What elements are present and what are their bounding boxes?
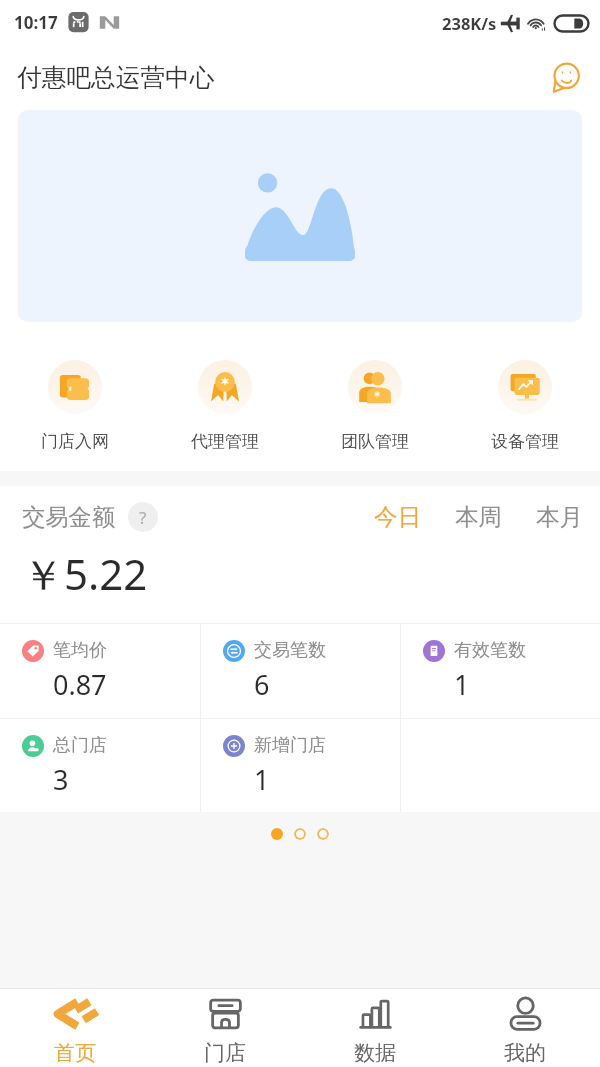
staticText: ? <box>139 506 147 529</box>
staticText: 0.87 <box>53 666 107 703</box>
staticText: ￥5.22 <box>22 545 148 602</box>
button[interactable]: 本月 <box>519 495 600 539</box>
staticText: 1 <box>254 761 270 798</box>
staticText: 6 <box>254 666 270 703</box>
staticText: 交易金额 <box>22 503 116 532</box>
staticText: 3 <box>53 761 69 798</box>
button[interactable]: 我的 <box>450 989 600 1067</box>
staticText: 门店入网 <box>41 431 109 452</box>
button[interactable]: 新增门店 <box>201 719 400 812</box>
staticText: 团队管理 <box>341 431 409 452</box>
button[interactable]: 代理管理 <box>150 360 300 452</box>
staticText: 首页 <box>54 1040 96 1066</box>
staticText: 付惠吧总运营中心 <box>17 62 215 93</box>
button[interactable]: 门店 <box>150 989 300 1067</box>
staticText: 数据 <box>354 1040 396 1066</box>
button[interactable]: 团队管理 <box>300 360 450 452</box>
staticText: 238K/s <box>442 12 497 34</box>
button[interactable]: 今日 <box>357 495 438 539</box>
staticText: 笔均价 <box>53 639 107 662</box>
staticText: 代理管理 <box>191 431 259 452</box>
button[interactable]: 门店入网 <box>0 360 150 452</box>
staticText: 门店 <box>204 1040 246 1066</box>
button[interactable]: 首页 <box>0 989 150 1067</box>
staticText: 10:17 <box>14 11 58 34</box>
staticText: 本周 <box>455 502 502 532</box>
button[interactable]: Help <box>128 502 158 532</box>
staticText: 本月 <box>536 502 583 532</box>
button[interactable]: 有效笔数 <box>401 624 600 718</box>
button[interactable]: 笔均价 <box>0 624 200 718</box>
button[interactable]: 总门店 <box>0 719 200 812</box>
staticText: 1 <box>454 666 470 703</box>
button[interactable]: 设备管理 <box>450 360 600 452</box>
button[interactable]: Feedback <box>546 58 586 98</box>
staticText: 新增门店 <box>254 734 326 757</box>
staticText: 有效笔数 <box>454 639 526 662</box>
staticText: 今日 <box>374 502 421 532</box>
staticText: 总门店 <box>53 734 107 757</box>
button[interactable]: 本周 <box>438 495 519 539</box>
button[interactable]: 数据 <box>300 989 450 1067</box>
staticText: 设备管理 <box>491 431 559 452</box>
button[interactable]: 交易笔数 <box>201 624 400 718</box>
staticText: 交易笔数 <box>254 639 326 662</box>
button[interactable]: Banner <box>18 110 582 322</box>
staticText: 我的 <box>504 1040 546 1066</box>
